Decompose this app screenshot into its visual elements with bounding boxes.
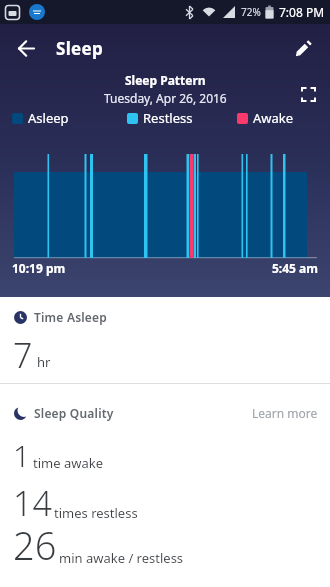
- staticText: 10:19 pm: [12, 260, 66, 276]
- staticText: Sleep: [56, 37, 103, 60]
- button[interactable]: Time Asleep: [14, 309, 330, 325]
- staticText: Tuesday, Apr 26, 2016: [104, 90, 227, 106]
- staticText: Restless: [143, 109, 193, 127]
- staticText: 7: [13, 332, 33, 378]
- staticText: Awake: [253, 109, 294, 127]
- button[interactable]: [6, 24, 46, 72]
- staticText: Asleep: [28, 109, 69, 127]
- staticText: 7:08 PM: [279, 4, 325, 20]
- staticText: time awake: [33, 454, 103, 472]
- staticText: Learn more: [252, 405, 318, 421]
- staticText: 26: [13, 519, 57, 571]
- button[interactable]: [282, 24, 326, 72]
- button[interactable]: [301, 87, 317, 103]
- staticText: times restless: [54, 504, 138, 522]
- staticText: hr: [37, 353, 51, 371]
- staticText: Sleep Quality: [34, 405, 114, 421]
- staticText: 5:45 am: [272, 260, 318, 276]
- staticText: 72%: [241, 5, 261, 19]
- staticText: 1: [13, 435, 31, 476]
- staticText: 14: [13, 480, 52, 526]
- staticText: Sleep Pattern: [125, 72, 206, 88]
- button[interactable]: Sleep Quality: [14, 405, 318, 421]
- staticText: min awake / restless: [59, 549, 184, 567]
- staticText: Time Asleep: [34, 309, 108, 325]
